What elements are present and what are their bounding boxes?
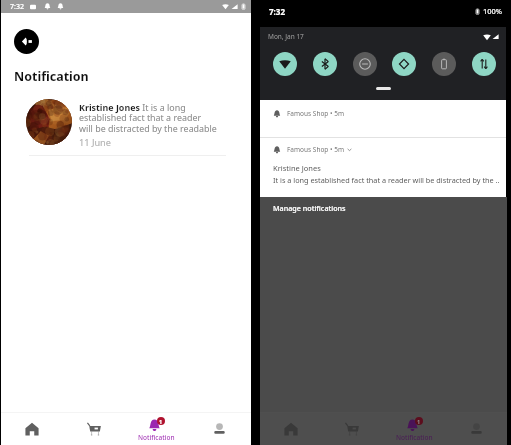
staticText: 1 bbox=[417, 418, 421, 425]
button[interactable]: Wi-Fi bbox=[273, 52, 297, 76]
button[interactable]: Bluetooth bbox=[313, 52, 337, 76]
staticText: Kristine Jones It is a long established … bbox=[79, 101, 217, 135]
button[interactable]: Auto-rotate bbox=[392, 52, 416, 76]
button[interactable]: Expand quick settings bbox=[376, 87, 391, 90]
button[interactable]: Home bbox=[260, 413, 321, 445]
staticText: 7:32 bbox=[10, 2, 24, 12]
button[interactable]: Cart bbox=[321, 413, 383, 445]
button[interactable]: Battery saver bbox=[432, 52, 456, 76]
button[interactable]: Cart bbox=[63, 413, 125, 445]
staticText: Famous Shop • 5m bbox=[287, 145, 344, 154]
staticText: Kristine Jones bbox=[273, 163, 321, 173]
staticText: Mon, Jan 17 bbox=[268, 32, 304, 41]
button[interactable]: 1 bbox=[383, 413, 445, 445]
staticText: 100% bbox=[483, 6, 503, 16]
staticText: 1 bbox=[159, 418, 163, 425]
button[interactable]: Famous Shop notification bbox=[260, 100, 506, 137]
button[interactable]: Manage notifications bbox=[273, 203, 346, 213]
staticText: 7:32 bbox=[269, 6, 285, 17]
button[interactable]: Kristine Jones It is a long established … bbox=[1, 99, 251, 149]
staticText: 11 June bbox=[79, 136, 111, 149]
staticText: Notification bbox=[14, 68, 89, 85]
button[interactable]: 1 bbox=[125, 413, 188, 445]
staticText: Notification bbox=[138, 433, 175, 442]
button[interactable]: Home bbox=[1, 413, 63, 445]
button[interactable]: Back bbox=[14, 29, 39, 54]
button[interactable]: Profile bbox=[188, 413, 251, 445]
staticText: Famous Shop • 5m bbox=[287, 109, 344, 118]
staticText: Notification bbox=[396, 433, 433, 442]
button[interactable]: Do not disturb bbox=[353, 52, 377, 76]
button[interactable]: Mobile data bbox=[472, 52, 496, 76]
button[interactable]: Famous Shop • 5m bbox=[260, 138, 506, 197]
staticText: It is a long established fact that a rea… bbox=[273, 175, 500, 185]
